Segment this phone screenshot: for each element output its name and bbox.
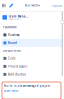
staticText: Board xyxy=(8,41,17,45)
button[interactable]: Your work xyxy=(23,0,41,11)
staticText: Roadmap xyxy=(8,33,20,37)
button[interactable]: Add shortcut xyxy=(1,70,63,78)
staticText: Add shortcut xyxy=(8,73,26,76)
staticText: PLANNING xyxy=(3,25,17,29)
staticText: You're in a team-managed project xyxy=(4,84,50,88)
button[interactable]: Code xyxy=(1,54,63,62)
button[interactable]: Board xyxy=(1,39,63,47)
button[interactable]: Collapse sidebar xyxy=(61,20,64,24)
staticText: Projects xyxy=(51,4,62,7)
button[interactable]: Project pages xyxy=(1,62,63,70)
button[interactable]: App switcher xyxy=(0,0,7,11)
button[interactable]: Team Mana… xyxy=(0,11,64,23)
staticText: Your work xyxy=(24,4,37,7)
staticText: Learn more xyxy=(4,89,19,92)
staticText: Software project xyxy=(9,18,20,20)
button[interactable]: Projects xyxy=(50,0,63,11)
button[interactable]: Roadmap xyxy=(1,31,63,39)
staticText: Team Mana… xyxy=(9,15,28,18)
button[interactable]: Create xyxy=(7,0,15,11)
staticText: Code xyxy=(8,57,16,60)
staticText: DEVELOPMENT xyxy=(3,49,22,52)
staticText: Project pages xyxy=(8,65,27,68)
